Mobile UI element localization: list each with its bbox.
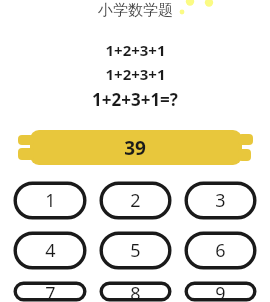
staticText: 2 xyxy=(130,188,141,213)
staticText: 5 xyxy=(130,238,141,263)
staticText: 1+2+3+1 xyxy=(105,64,166,84)
staticText: 3 xyxy=(215,188,226,213)
staticText: 1+2+3+1=? xyxy=(92,88,178,111)
staticText: 小学数学题 xyxy=(98,1,173,20)
staticText: 39 xyxy=(124,135,146,161)
button[interactable]: 1 xyxy=(13,181,87,220)
staticText: 9 xyxy=(215,281,226,302)
button[interactable]: 8 xyxy=(99,281,172,302)
staticText: 6 xyxy=(215,238,226,263)
staticText: 7 xyxy=(45,281,56,302)
button[interactable]: 2 xyxy=(99,181,172,220)
button[interactable]: 9 xyxy=(184,281,257,302)
staticText: 1 xyxy=(45,188,56,213)
staticText: 1+2+3+1 xyxy=(105,40,166,60)
button[interactable]: 3 xyxy=(184,181,257,220)
button[interactable]: 4 xyxy=(13,231,87,270)
button[interactable]: 5 xyxy=(99,231,172,270)
staticText: 4 xyxy=(45,238,56,263)
button[interactable]: 7 xyxy=(13,281,87,302)
button[interactable]: 39 xyxy=(0,128,270,168)
staticText: 8 xyxy=(130,281,141,302)
button[interactable]: 6 xyxy=(184,231,257,270)
